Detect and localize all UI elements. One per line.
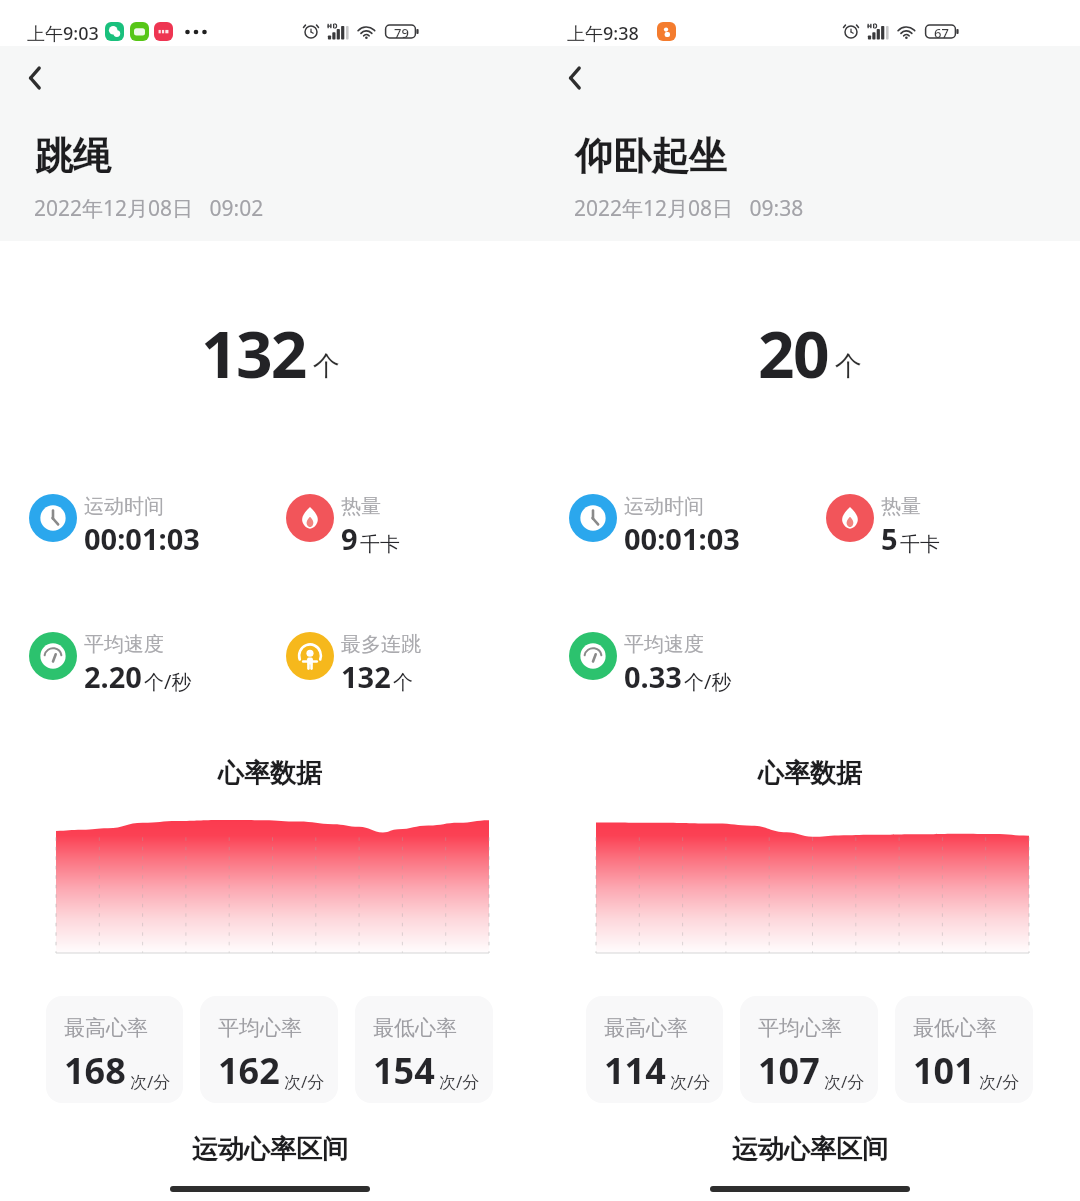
- staticText: 79: [394, 24, 409, 42]
- staticText: 千卡: [360, 532, 400, 557]
- button[interactable]: 最低心率: [895, 996, 1033, 1103]
- staticText: 运动心率区间: [0, 1133, 540, 1166]
- staticText: 平均心率: [218, 1015, 302, 1041]
- staticText: 平均速度: [84, 632, 164, 657]
- staticText: 个: [835, 349, 862, 383]
- button[interactable]: 最低心率: [355, 996, 493, 1103]
- staticText: 心率数据: [0, 757, 540, 790]
- staticText: 平均心率: [758, 1015, 842, 1041]
- staticText: 个/秒: [684, 668, 732, 695]
- staticText: 次/分: [670, 1070, 711, 1093]
- staticText: 运动心率区间: [540, 1133, 1080, 1166]
- staticText: 00:01:03: [624, 519, 740, 558]
- button[interactable]: 热量: [286, 484, 496, 548]
- staticText: 最多连跳: [341, 632, 421, 657]
- staticText: 最低心率: [373, 1015, 457, 1041]
- button[interactable]: 平均心率: [740, 996, 878, 1103]
- staticText: 101: [913, 1046, 975, 1095]
- button[interactable]: 运动心率区间: [0, 1120, 540, 1172]
- button[interactable]: 平均速度: [29, 622, 239, 686]
- button[interactable]: 运动时间: [29, 484, 239, 548]
- staticText: 2022年12月08日 09:38: [574, 194, 804, 223]
- button[interactable]: 最高心率: [46, 996, 183, 1103]
- staticText: 运动时间: [84, 494, 164, 519]
- staticText: 2022年12月08日 09:02: [34, 194, 264, 223]
- staticText: 最高心率: [604, 1015, 688, 1041]
- staticText: 运动时间: [624, 494, 704, 519]
- button[interactable]: 最高心率: [586, 996, 723, 1103]
- staticText: 仰卧起坐: [575, 132, 727, 180]
- staticText: 跳绳: [35, 132, 111, 180]
- staticText: 心率数据: [540, 757, 1080, 790]
- staticText: 次/分: [439, 1070, 480, 1093]
- staticText: 154: [373, 1046, 435, 1095]
- button[interactable]: 平均速度: [569, 622, 779, 686]
- staticText: 67: [934, 24, 949, 42]
- staticText: 上午9:38: [567, 21, 639, 46]
- staticText: 平均速度: [624, 632, 704, 657]
- staticText: 个/秒: [144, 668, 192, 695]
- staticText: 114: [604, 1046, 666, 1095]
- button[interactable]: Back: [553, 56, 597, 100]
- staticText: 9: [341, 519, 358, 558]
- staticText: 20: [758, 310, 828, 397]
- staticText: 最高心率: [64, 1015, 148, 1041]
- staticText: 次/分: [130, 1070, 171, 1093]
- button[interactable]: 运动心率区间: [540, 1120, 1080, 1172]
- staticText: 次/分: [979, 1070, 1020, 1093]
- staticText: 0.33: [624, 657, 682, 696]
- staticText: 5: [881, 519, 898, 558]
- staticText: 热量: [341, 494, 381, 519]
- staticText: 次/分: [824, 1070, 865, 1093]
- staticText: 热量: [881, 494, 921, 519]
- staticText: 107: [758, 1046, 820, 1095]
- staticText: 132: [341, 657, 391, 696]
- button[interactable]: 最多连跳: [286, 622, 496, 686]
- button[interactable]: Back: [13, 56, 57, 100]
- staticText: 上午9:03: [27, 21, 99, 46]
- staticText: 最低心率: [913, 1015, 997, 1041]
- staticText: 00:01:03: [84, 519, 200, 558]
- staticText: 132: [201, 310, 306, 397]
- staticText: 个: [313, 349, 340, 383]
- staticText: 千卡: [900, 532, 940, 557]
- button[interactable]: 运动时间: [569, 484, 779, 548]
- staticText: 168: [64, 1046, 126, 1095]
- staticText: 个: [393, 670, 413, 695]
- staticText: 162: [218, 1046, 280, 1095]
- button[interactable]: 平均心率: [200, 996, 338, 1103]
- staticText: 次/分: [284, 1070, 325, 1093]
- staticText: 2.20: [84, 657, 142, 696]
- button[interactable]: 热量: [826, 484, 1036, 548]
